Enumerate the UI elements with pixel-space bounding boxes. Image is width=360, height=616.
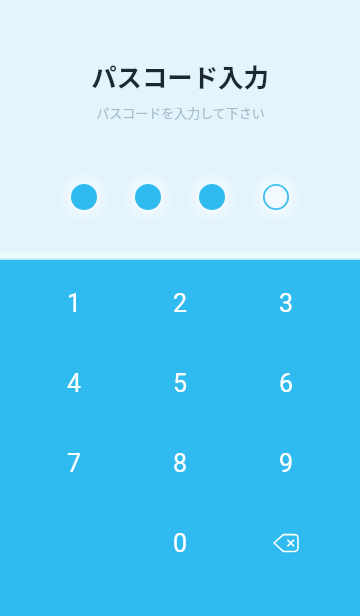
staticText: 0 [173, 529, 188, 558]
button[interactable]: 7 [21, 423, 127, 503]
staticText: 8 [173, 449, 188, 478]
button[interactable]: 1 [21, 263, 127, 343]
button[interactable]: 8 [127, 423, 233, 503]
button[interactable]: 3 [233, 263, 339, 343]
staticText: パスコード入力 [91, 58, 269, 95]
staticText: 7 [67, 449, 82, 478]
button[interactable]: Backspace [233, 503, 339, 583]
button[interactable]: 9 [233, 423, 339, 503]
button[interactable]: 0 [127, 503, 233, 583]
button[interactable]: 5 [127, 343, 233, 423]
staticText: 6 [279, 369, 294, 398]
staticText: 1 [67, 289, 82, 318]
staticText: パスコードを入力して下さい [96, 103, 265, 122]
staticText: 3 [279, 289, 294, 318]
staticText: 2 [173, 289, 188, 318]
button[interactable]: 6 [233, 343, 339, 423]
staticText: 9 [279, 449, 294, 478]
button[interactable]: 2 [127, 263, 233, 343]
other: Backspace [273, 530, 299, 556]
staticText: 4 [67, 369, 82, 398]
staticText: 5 [173, 369, 188, 398]
button[interactable]: 4 [21, 343, 127, 423]
